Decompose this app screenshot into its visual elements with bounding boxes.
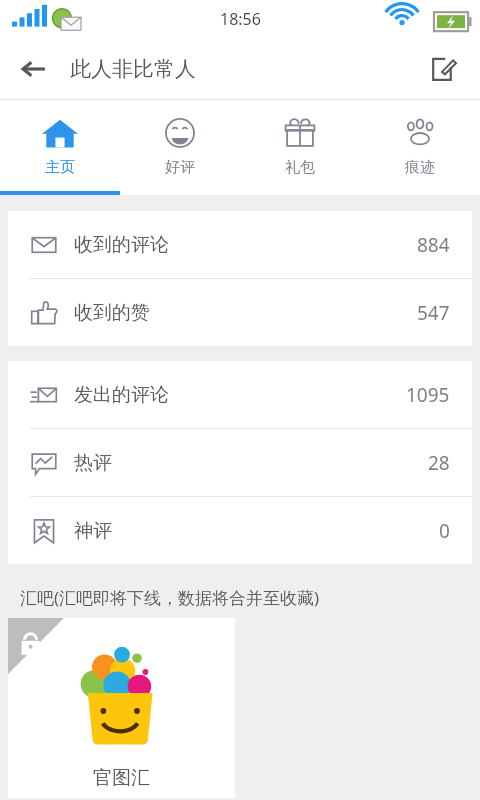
button[interactable]: 官图汇 [8,618,235,798]
button[interactable]: 热评 [8,429,472,496]
staticText: 热评 [74,451,112,475]
button[interactable]: 发出的评论 [8,361,472,428]
staticText: 547 [417,300,450,326]
staticText: 发出的评论 [74,383,169,407]
staticText: 官图汇 [93,766,150,790]
staticText: 神评 [74,519,112,543]
button[interactable]: 好评 [120,100,240,191]
staticText: 18:56 [220,8,261,30]
staticText: 0 [439,518,450,544]
button[interactable]: Back [10,45,58,93]
staticText: 痕迹 [405,158,435,177]
staticText: 884 [417,232,450,258]
button[interactable]: Compose [420,45,468,93]
staticText: 此人非比常人 [70,56,196,82]
staticText: 汇吧(汇吧即将下线，数据将合并至收藏) [20,586,320,609]
button[interactable]: 主页 [0,100,120,191]
button[interactable]: 神评 [8,497,472,564]
staticText: 1095 [406,382,450,408]
button[interactable]: 礼包 [240,100,360,191]
staticText: 收到的评论 [74,233,169,257]
button[interactable]: 痕迹 [360,100,480,191]
button[interactable]: 收到的评论 [8,211,472,278]
staticText: 主页 [45,158,75,177]
staticText: 收到的赞 [74,301,150,325]
button[interactable]: 收到的赞 [8,279,472,346]
staticText: 好评 [165,158,195,177]
staticText: 28 [428,450,450,476]
staticText: 礼包 [285,158,315,177]
